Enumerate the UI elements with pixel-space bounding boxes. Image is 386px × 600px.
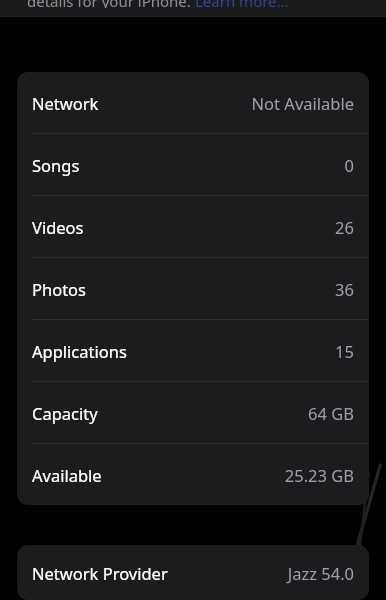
staticText: details for your iPhone. xyxy=(27,0,195,8)
staticText: 26 xyxy=(335,216,354,238)
staticText: 0 xyxy=(344,154,354,176)
button[interactable]: Network Provider xyxy=(17,545,369,600)
staticText: Not Available xyxy=(251,92,354,114)
button[interactable]: Photos xyxy=(17,258,369,319)
button[interactable]: Capacity xyxy=(17,382,369,443)
staticText: Photos xyxy=(32,278,87,300)
button[interactable]: Applications xyxy=(17,320,369,381)
staticText: Available xyxy=(32,464,102,486)
staticText: Capacity xyxy=(32,402,98,424)
staticText: 36 xyxy=(335,278,354,300)
button[interactable]: Songs xyxy=(17,134,369,195)
staticText: Jazz 54.0 xyxy=(287,562,354,584)
staticText: Videos xyxy=(32,216,84,238)
staticText: 15 xyxy=(335,340,354,362)
button[interactable]: Network xyxy=(17,72,369,133)
staticText: Network Provider xyxy=(32,562,168,584)
staticText: Network xyxy=(32,92,99,114)
staticText: 25.23 GB xyxy=(284,464,354,486)
staticText: Applications xyxy=(32,340,127,362)
button[interactable]: Videos xyxy=(17,196,369,257)
staticText: Learn more... xyxy=(195,0,289,8)
staticText: Songs xyxy=(32,154,80,176)
button[interactable]: Available xyxy=(17,444,369,505)
staticText: 64 GB xyxy=(308,402,354,424)
